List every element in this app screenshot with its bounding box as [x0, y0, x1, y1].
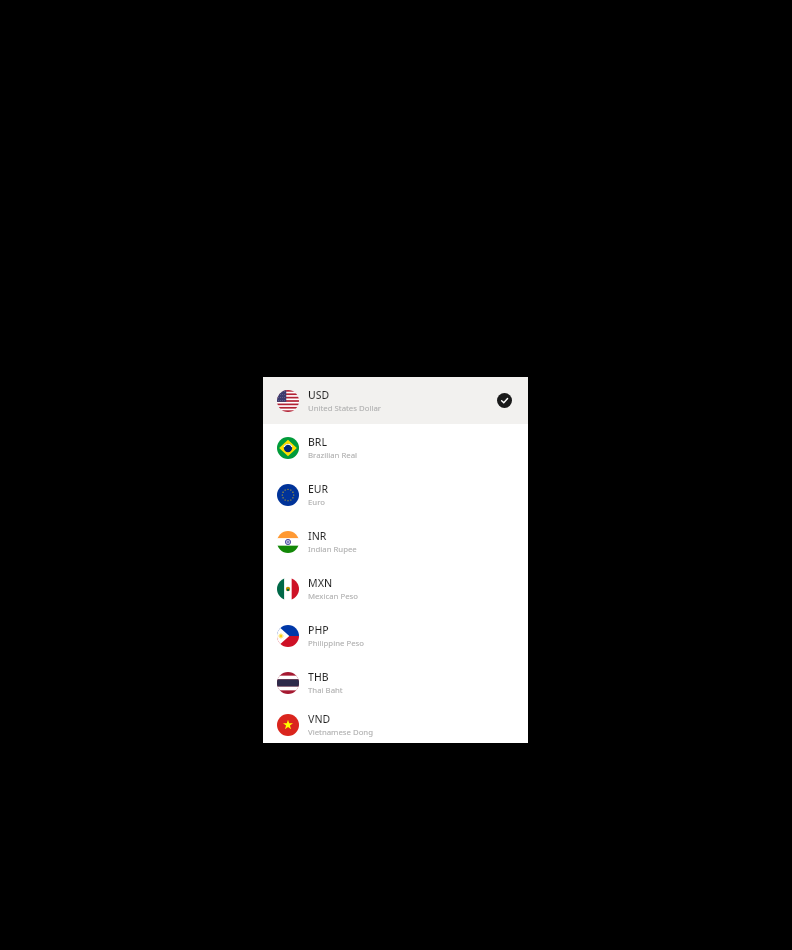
button[interactable]: USD — [263, 377, 528, 424]
staticText: THB — [308, 670, 329, 684]
button[interactable]: MXN — [263, 565, 528, 612]
staticText: Thai Baht — [308, 685, 343, 696]
other: Selected — [497, 393, 512, 408]
staticText: USD — [308, 388, 330, 402]
staticText: Indian Rupee — [308, 544, 357, 555]
staticText: EUR — [308, 482, 329, 496]
staticText: MXN — [308, 576, 333, 590]
staticText: United States Dollar — [308, 403, 382, 414]
button[interactable]: INR — [263, 518, 528, 565]
staticText: Euro — [308, 497, 325, 508]
staticText: Vietnamese Dong — [308, 727, 373, 738]
button[interactable]: THB — [263, 659, 528, 706]
button[interactable]: EUR — [263, 471, 528, 518]
staticText: Philippine Peso — [308, 638, 364, 649]
staticText: INR — [308, 529, 327, 543]
button[interactable]: VND — [263, 706, 528, 743]
button[interactable]: BRL — [263, 424, 528, 471]
staticText: Brazilian Real — [308, 450, 358, 461]
staticText: VND — [308, 712, 331, 726]
staticText: PHP — [308, 623, 329, 637]
staticText: Mexican Peso — [308, 591, 358, 602]
button[interactable]: PHP — [263, 612, 528, 659]
staticText: BRL — [308, 435, 328, 449]
